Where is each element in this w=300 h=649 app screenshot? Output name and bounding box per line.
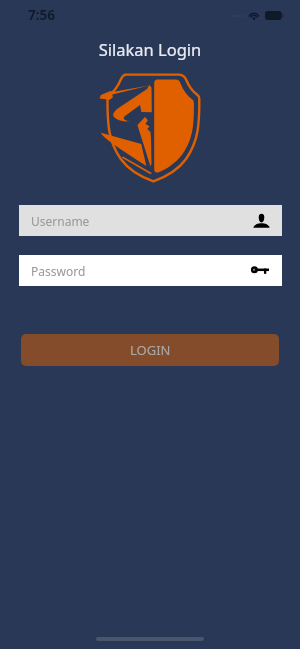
button[interactable]: Username <box>19 205 282 236</box>
staticText: Password <box>31 263 86 279</box>
button[interactable]: LOGIN <box>21 334 279 366</box>
staticText: LOGIN <box>130 341 171 359</box>
staticText: Username <box>31 213 90 229</box>
staticText: 7:56 <box>28 6 55 24</box>
other: Username <box>253 212 270 229</box>
staticText: Silakan Login <box>0 38 300 60</box>
button[interactable]: Password <box>19 255 282 286</box>
other: Password <box>251 265 269 277</box>
